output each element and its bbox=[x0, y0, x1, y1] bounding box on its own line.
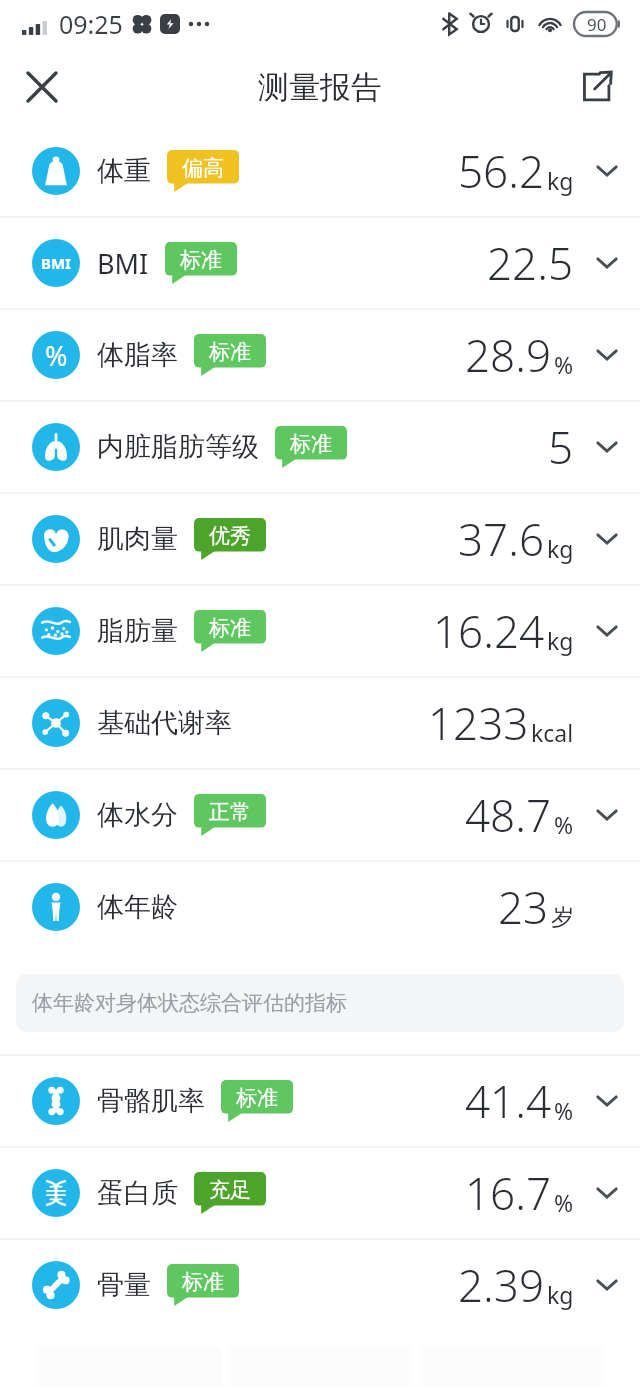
staticText: BMI bbox=[97, 245, 149, 282]
staticText: 16.7 bbox=[465, 1163, 552, 1223]
staticText: 22.5 bbox=[487, 233, 574, 293]
staticText: 基础代谢率 bbox=[97, 706, 232, 740]
button[interactable]: 体重 bbox=[0, 126, 640, 216]
button[interactable]: 脂肪量 bbox=[0, 586, 640, 676]
staticText: kg bbox=[547, 1279, 574, 1310]
button[interactable]: 骨量 bbox=[0, 1240, 640, 1330]
staticText: 体水分 bbox=[97, 798, 178, 832]
button[interactable]: % bbox=[0, 310, 640, 400]
staticText: kg bbox=[547, 165, 574, 196]
staticText: 56.2 bbox=[458, 141, 545, 201]
button[interactable]: BMI bbox=[0, 218, 640, 308]
staticText: 蛋白质 bbox=[97, 1176, 178, 1210]
staticText: % bbox=[554, 1187, 574, 1218]
staticText: 测量报告 bbox=[258, 68, 382, 107]
staticText: 标准 bbox=[236, 1085, 278, 1111]
staticText: 28.9 bbox=[465, 325, 552, 385]
staticText: BMI bbox=[41, 253, 71, 273]
staticText: 脂肪量 bbox=[97, 614, 178, 648]
staticText: 16.24 bbox=[433, 601, 545, 661]
button[interactable]: Share bbox=[568, 59, 624, 115]
staticText: 体年龄对身体状态综合评估的指标 bbox=[32, 990, 347, 1016]
staticText: kg bbox=[547, 533, 574, 564]
staticText: 正常 bbox=[209, 799, 251, 825]
button[interactable]: Close bbox=[14, 59, 70, 115]
staticText: 标准 bbox=[180, 247, 222, 273]
staticText: 充足 bbox=[209, 1177, 251, 1203]
staticText: 体脂率 bbox=[97, 338, 178, 372]
staticText: 37.6 bbox=[458, 509, 545, 569]
staticText: % bbox=[45, 337, 68, 374]
staticText: 体重 bbox=[97, 154, 151, 188]
staticText: 优秀 bbox=[209, 523, 251, 549]
staticText: 09:25 bbox=[59, 7, 123, 41]
staticText: 体年龄 bbox=[97, 890, 178, 924]
staticText: 90 bbox=[587, 13, 607, 36]
staticText: 标准 bbox=[182, 1269, 224, 1295]
staticText: 23 bbox=[498, 877, 549, 937]
staticText: % bbox=[554, 1095, 574, 1126]
staticText: % bbox=[554, 349, 574, 380]
button[interactable]: 蛋白质 bbox=[0, 1148, 640, 1238]
staticText: 标准 bbox=[209, 339, 251, 365]
staticText: 5 bbox=[548, 417, 574, 477]
staticText: 48.7 bbox=[465, 785, 552, 845]
staticText: 41.4 bbox=[465, 1071, 552, 1131]
staticText: 1233 bbox=[428, 693, 529, 753]
staticText: 标准 bbox=[209, 615, 251, 641]
button[interactable]: 肌肉量 bbox=[0, 494, 640, 584]
button[interactable]: 基础代谢率 bbox=[0, 678, 640, 768]
staticText: 2.39 bbox=[458, 1255, 545, 1315]
staticText: kg bbox=[547, 625, 574, 656]
staticText: 内脏脂肪等级 bbox=[97, 430, 259, 464]
staticText: 偏高 bbox=[182, 155, 224, 181]
staticText: 岁 bbox=[551, 903, 574, 932]
button[interactable]: 体年龄 bbox=[0, 862, 640, 952]
staticText: % bbox=[554, 809, 574, 840]
staticText: kcal bbox=[531, 717, 574, 748]
button[interactable]: 内脏脂肪等级 bbox=[0, 402, 640, 492]
staticText: 肌肉量 bbox=[97, 522, 178, 556]
button[interactable]: 骨骼肌率 bbox=[0, 1056, 640, 1146]
button[interactable]: 体水分 bbox=[0, 770, 640, 860]
staticText: 标准 bbox=[290, 431, 332, 457]
staticText: 骨量 bbox=[97, 1268, 151, 1302]
staticText: 骨骼肌率 bbox=[97, 1084, 205, 1118]
